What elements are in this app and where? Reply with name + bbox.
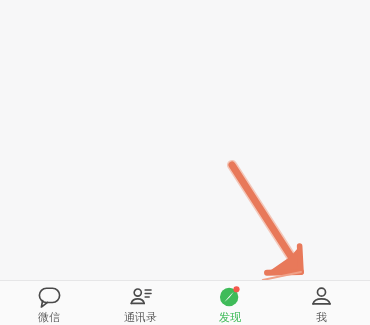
button[interactable]: Discover (188, 281, 272, 324)
staticText: 我 (316, 310, 327, 324)
staticText: 发现 (219, 310, 241, 324)
button[interactable]: Contacts (98, 281, 182, 324)
staticText: 通讯录 (124, 310, 157, 324)
staticText: 微信 (38, 310, 60, 324)
button[interactable]: Me (279, 281, 363, 324)
button[interactable]: Chats (7, 281, 91, 324)
